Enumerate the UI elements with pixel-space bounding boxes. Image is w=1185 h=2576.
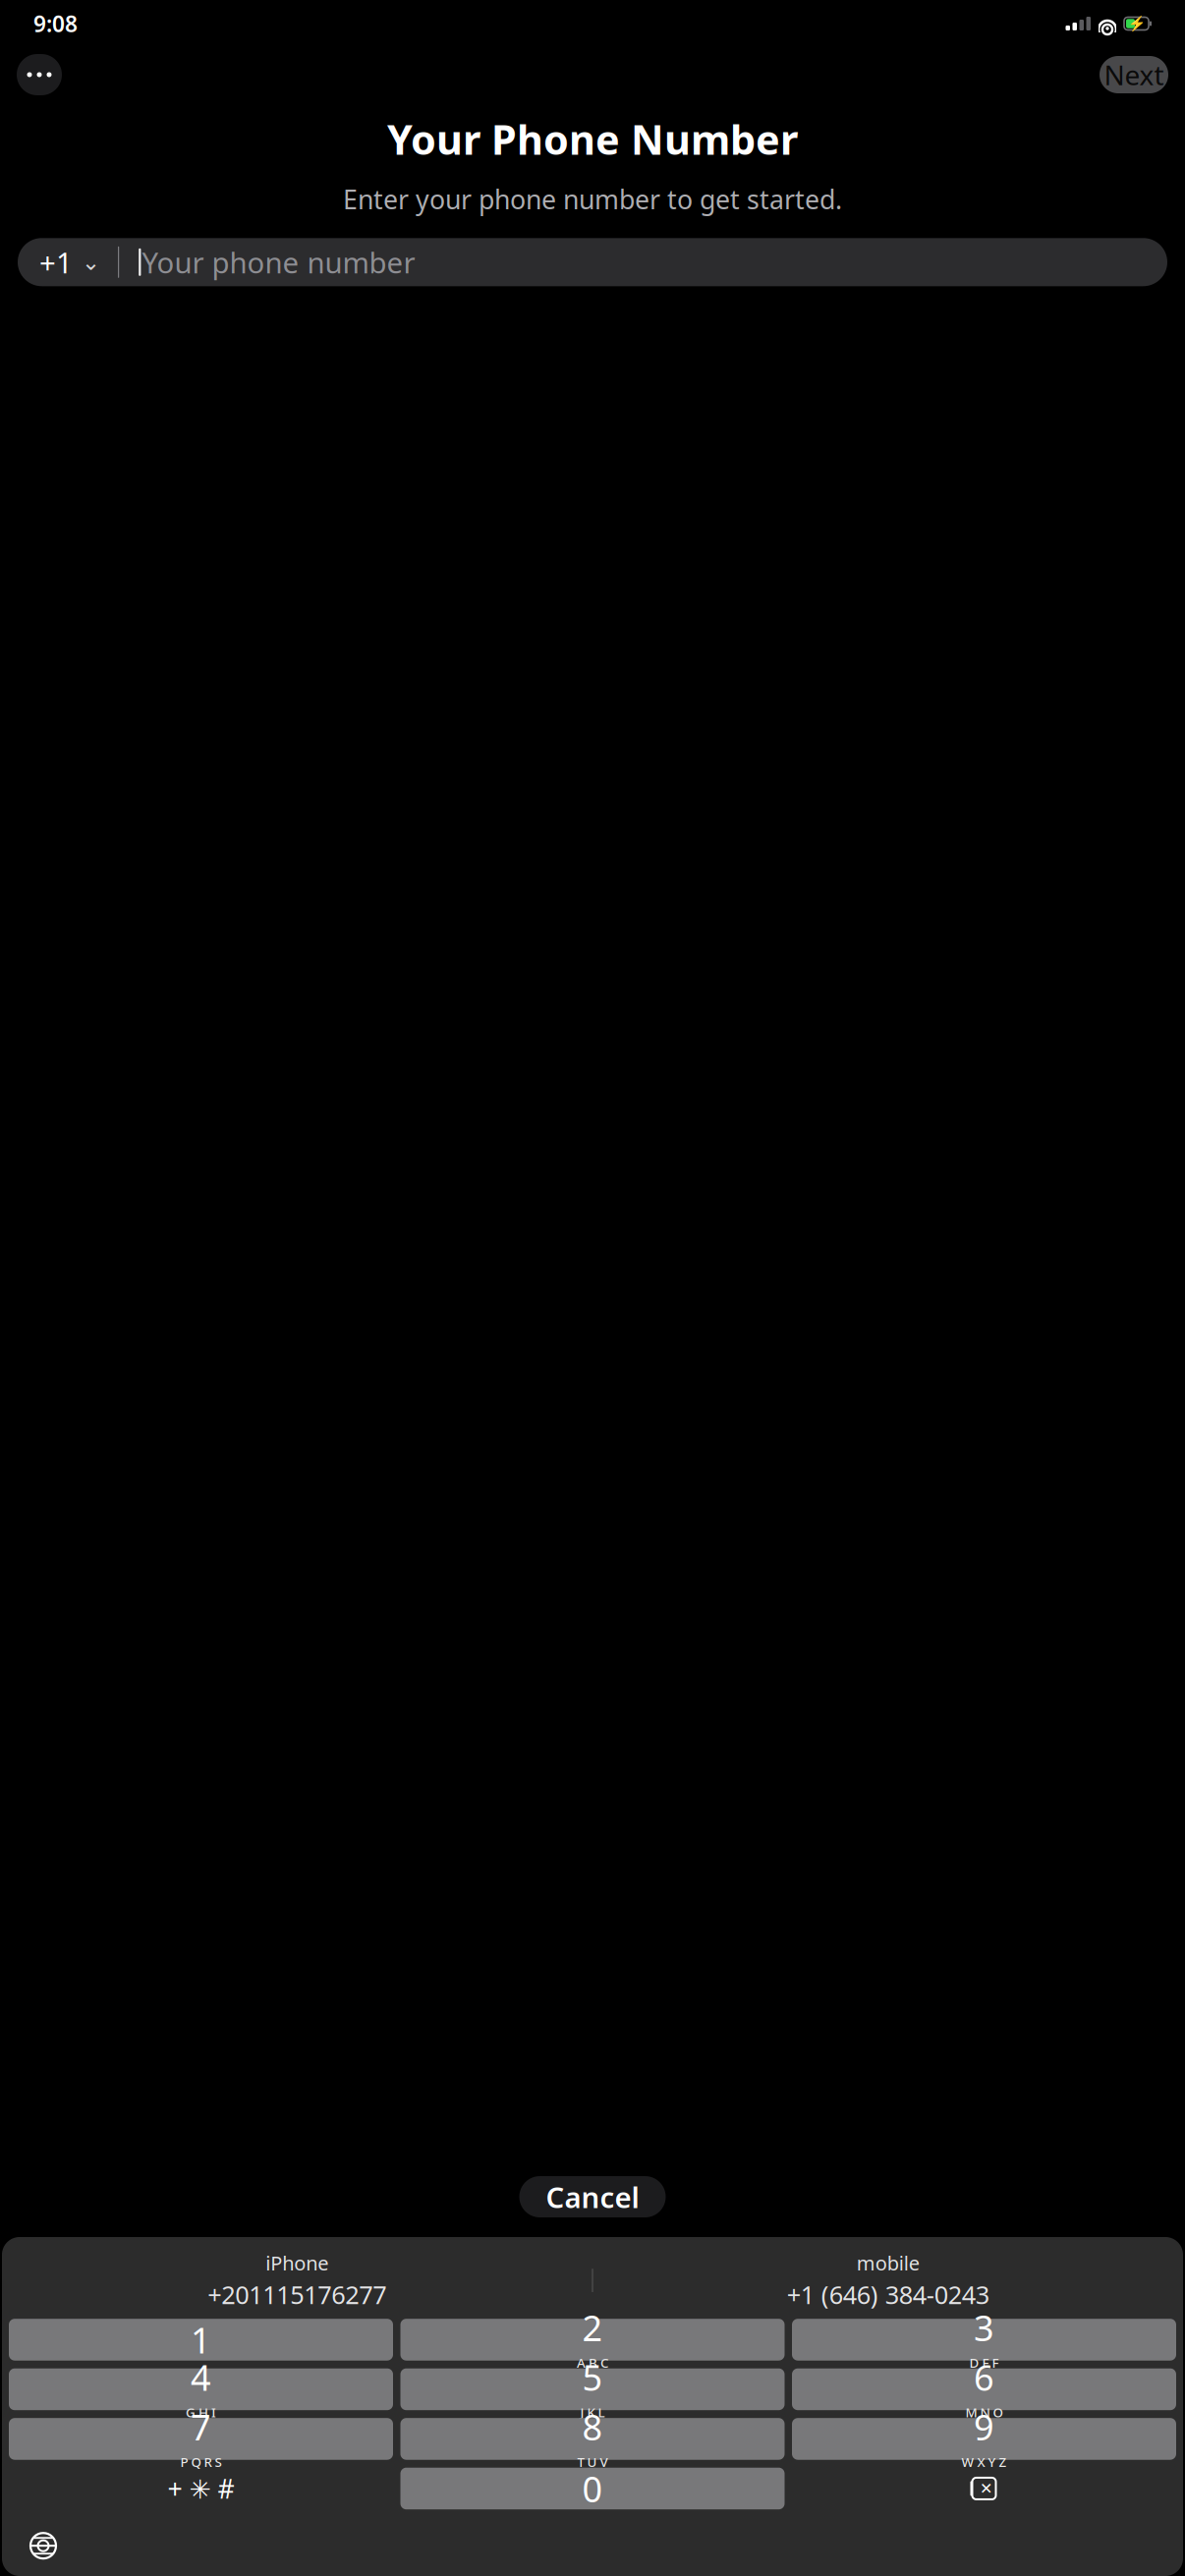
button[interactable]: 2 [400,2319,785,2361]
staticText: 9:08 [33,9,78,38]
staticText: 8 [582,2403,603,2450]
button[interactable]: 5 [400,2368,785,2410]
staticText: 3 [974,2304,994,2351]
button[interactable]: Next keyboard [18,2523,69,2568]
button[interactable]: 6 [792,2368,1176,2410]
staticText: G H I [186,2404,216,2421]
button[interactable]: 8 [400,2418,785,2460]
staticText: mobile [857,2250,920,2276]
button[interactable]: mobile [593,2246,1183,2315]
staticText: 9 [974,2403,994,2450]
staticText: 5 [582,2354,603,2401]
button[interactable]: 4 [9,2368,393,2410]
staticText: +201115176277 [208,2278,386,2311]
staticText: 2 [582,2304,603,2351]
staticText: +1 [39,243,73,281]
staticText: D E F [969,2354,999,2371]
staticText: P Q R S [180,2453,222,2471]
staticText: Cancel [546,2178,639,2216]
staticText: Your phone number [142,243,415,281]
staticText: ✕ [980,2480,992,2498]
staticText: +1 (646) 384-0243 [787,2278,989,2311]
staticText: W X Y Z [961,2453,1007,2471]
button[interactable]: More options [17,54,62,95]
staticText: ⚡ [1128,15,1145,32]
button[interactable]: 3 [792,2319,1176,2361]
staticText: Enter your phone number to get started. [343,182,842,216]
staticText: 0 [582,2465,603,2512]
staticText: 7 [191,2403,211,2450]
staticText: Your Phone Number [387,112,798,166]
staticText: iPhone [265,2250,328,2276]
button[interactable]: Next [1100,56,1168,93]
staticText: Next [1104,56,1164,93]
staticText: 6 [974,2354,994,2401]
button[interactable]: 1 [9,2319,393,2361]
button[interactable]: Delete [792,2468,1176,2509]
staticText: ⌄ [82,249,100,275]
staticText: A B C [577,2354,608,2371]
button[interactable]: Cancel [519,2176,666,2217]
button[interactable]: Plus star hash [9,2468,393,2509]
staticText: 4 [191,2354,211,2401]
staticText: 1 [191,2316,211,2363]
staticText: J K L [580,2404,605,2421]
button[interactable]: 0 [400,2468,785,2509]
button[interactable]: +1 [18,238,1167,286]
button[interactable]: iPhone [2,2246,592,2315]
button[interactable]: 9 [792,2418,1176,2460]
button[interactable]: 7 [9,2418,393,2460]
staticText: M N O [965,2404,1003,2421]
staticText: + ✳ # [168,2471,234,2506]
staticText: T U V [577,2453,608,2471]
